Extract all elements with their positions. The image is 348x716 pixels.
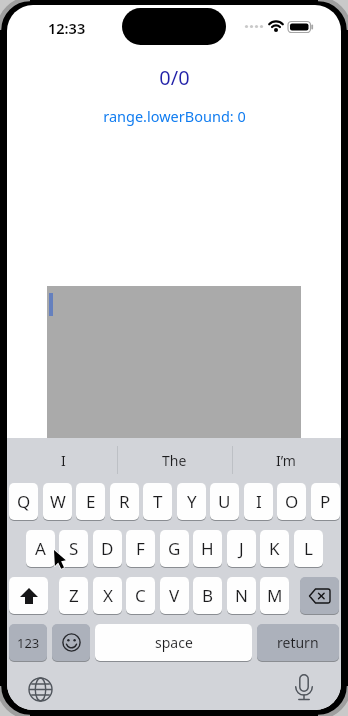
staticText: range.lowerBound: 0: [103, 106, 246, 126]
button[interactable]: 123: [9, 624, 47, 661]
staticText: space: [155, 633, 193, 652]
staticText: The: [162, 451, 187, 469]
button[interactable]: I: [33, 451, 93, 469]
button[interactable]: C: [126, 577, 155, 614]
button[interactable]: [52, 624, 90, 661]
staticText: 123: [17, 634, 40, 652]
staticText: E: [86, 490, 96, 513]
button[interactable]: Z: [59, 577, 88, 614]
button[interactable]: M: [260, 577, 289, 614]
button[interactable]: H: [193, 530, 222, 567]
button[interactable]: L: [294, 530, 323, 567]
button[interactable]: W: [43, 483, 72, 520]
staticText: C: [135, 584, 146, 607]
button[interactable]: return: [257, 624, 339, 661]
staticText: W: [50, 490, 66, 513]
button[interactable]: F: [126, 530, 155, 567]
staticText: H: [201, 537, 214, 560]
staticText: S: [69, 537, 79, 560]
button[interactable]: A: [26, 530, 55, 567]
button[interactable]: I’m: [256, 451, 316, 469]
button[interactable]: [25, 674, 55, 704]
staticText: I’m: [276, 451, 296, 469]
staticText: 0/0: [159, 64, 190, 91]
button[interactable]: [47, 286, 301, 438]
button[interactable]: X: [93, 577, 122, 614]
staticText: B: [202, 584, 214, 607]
staticText: A: [35, 537, 46, 560]
button[interactable]: J: [227, 530, 256, 567]
staticText: O: [285, 490, 299, 513]
button[interactable]: [289, 673, 319, 703]
button[interactable]: E: [76, 483, 105, 520]
button[interactable]: V: [160, 577, 189, 614]
staticText: V: [169, 584, 180, 607]
staticText: I: [256, 490, 262, 513]
button[interactable]: [300, 577, 339, 614]
button[interactable]: The: [144, 451, 204, 469]
button[interactable]: G: [160, 530, 189, 567]
button[interactable]: N: [227, 577, 256, 614]
button[interactable]: B: [193, 577, 222, 614]
button[interactable]: S: [59, 530, 88, 567]
button[interactable]: Y: [177, 483, 206, 520]
staticText: Q: [17, 490, 31, 513]
button[interactable]: [9, 577, 48, 614]
button[interactable]: P: [311, 483, 340, 520]
staticText: P: [320, 490, 331, 513]
staticText: U: [218, 490, 231, 513]
staticText: M: [267, 584, 283, 607]
staticText: K: [269, 537, 280, 560]
button[interactable]: U: [210, 483, 239, 520]
staticText: Z: [69, 584, 79, 607]
staticText: J: [239, 537, 244, 560]
staticText: Y: [187, 490, 197, 513]
staticText: G: [168, 537, 181, 560]
button[interactable]: R: [110, 483, 139, 520]
staticText: 12:33: [48, 18, 86, 36]
button[interactable]: O: [277, 483, 306, 520]
button[interactable]: space: [95, 624, 252, 661]
staticText: I: [61, 451, 66, 469]
button[interactable]: K: [260, 530, 289, 567]
staticText: X: [103, 584, 113, 607]
staticText: F: [136, 537, 145, 560]
button[interactable]: T: [143, 483, 172, 520]
staticText: D: [101, 537, 114, 560]
button[interactable]: I: [244, 483, 273, 520]
staticText: N: [235, 584, 248, 607]
button[interactable]: Q: [9, 483, 38, 520]
staticText: T: [153, 490, 163, 513]
staticText: L: [304, 537, 313, 560]
staticText: R: [119, 490, 130, 513]
button[interactable]: D: [93, 530, 122, 567]
staticText: return: [277, 633, 319, 652]
